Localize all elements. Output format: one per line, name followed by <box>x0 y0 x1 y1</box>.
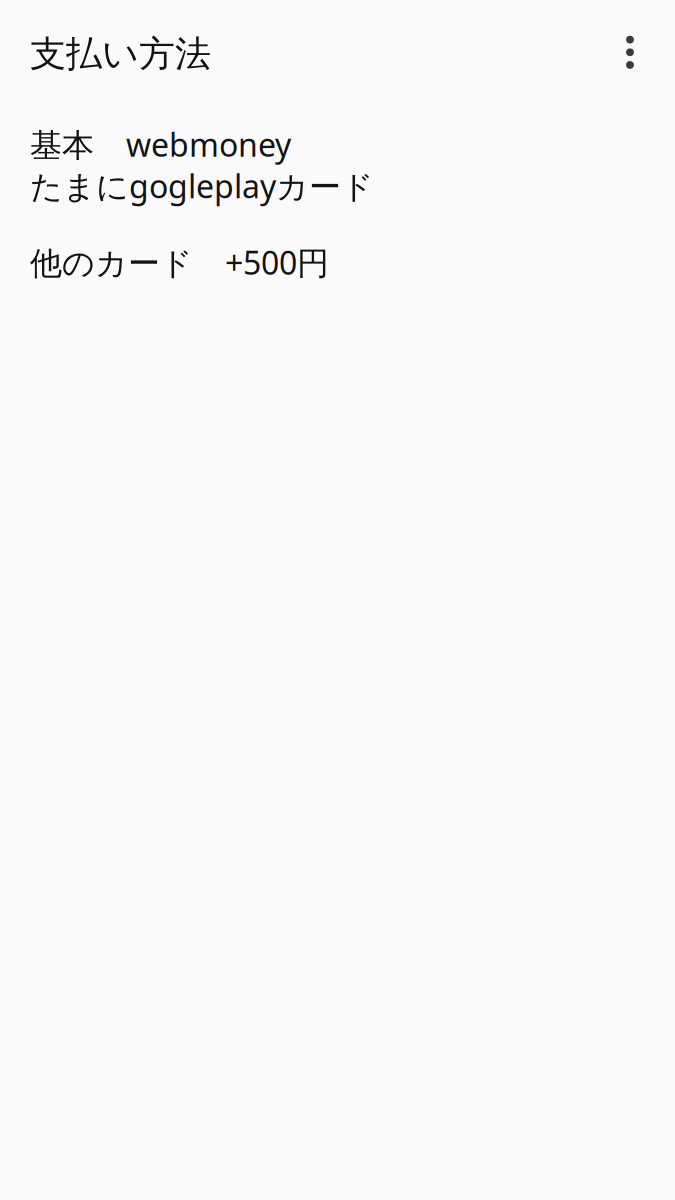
staticText: たまにgogleplayカード <box>30 164 374 207</box>
staticText: 基本 webmoney <box>30 123 291 165</box>
button[interactable]: More options <box>606 30 654 78</box>
staticText: 他のカード +500円 <box>30 241 329 283</box>
staticText: 支払い方法 <box>30 32 211 76</box>
